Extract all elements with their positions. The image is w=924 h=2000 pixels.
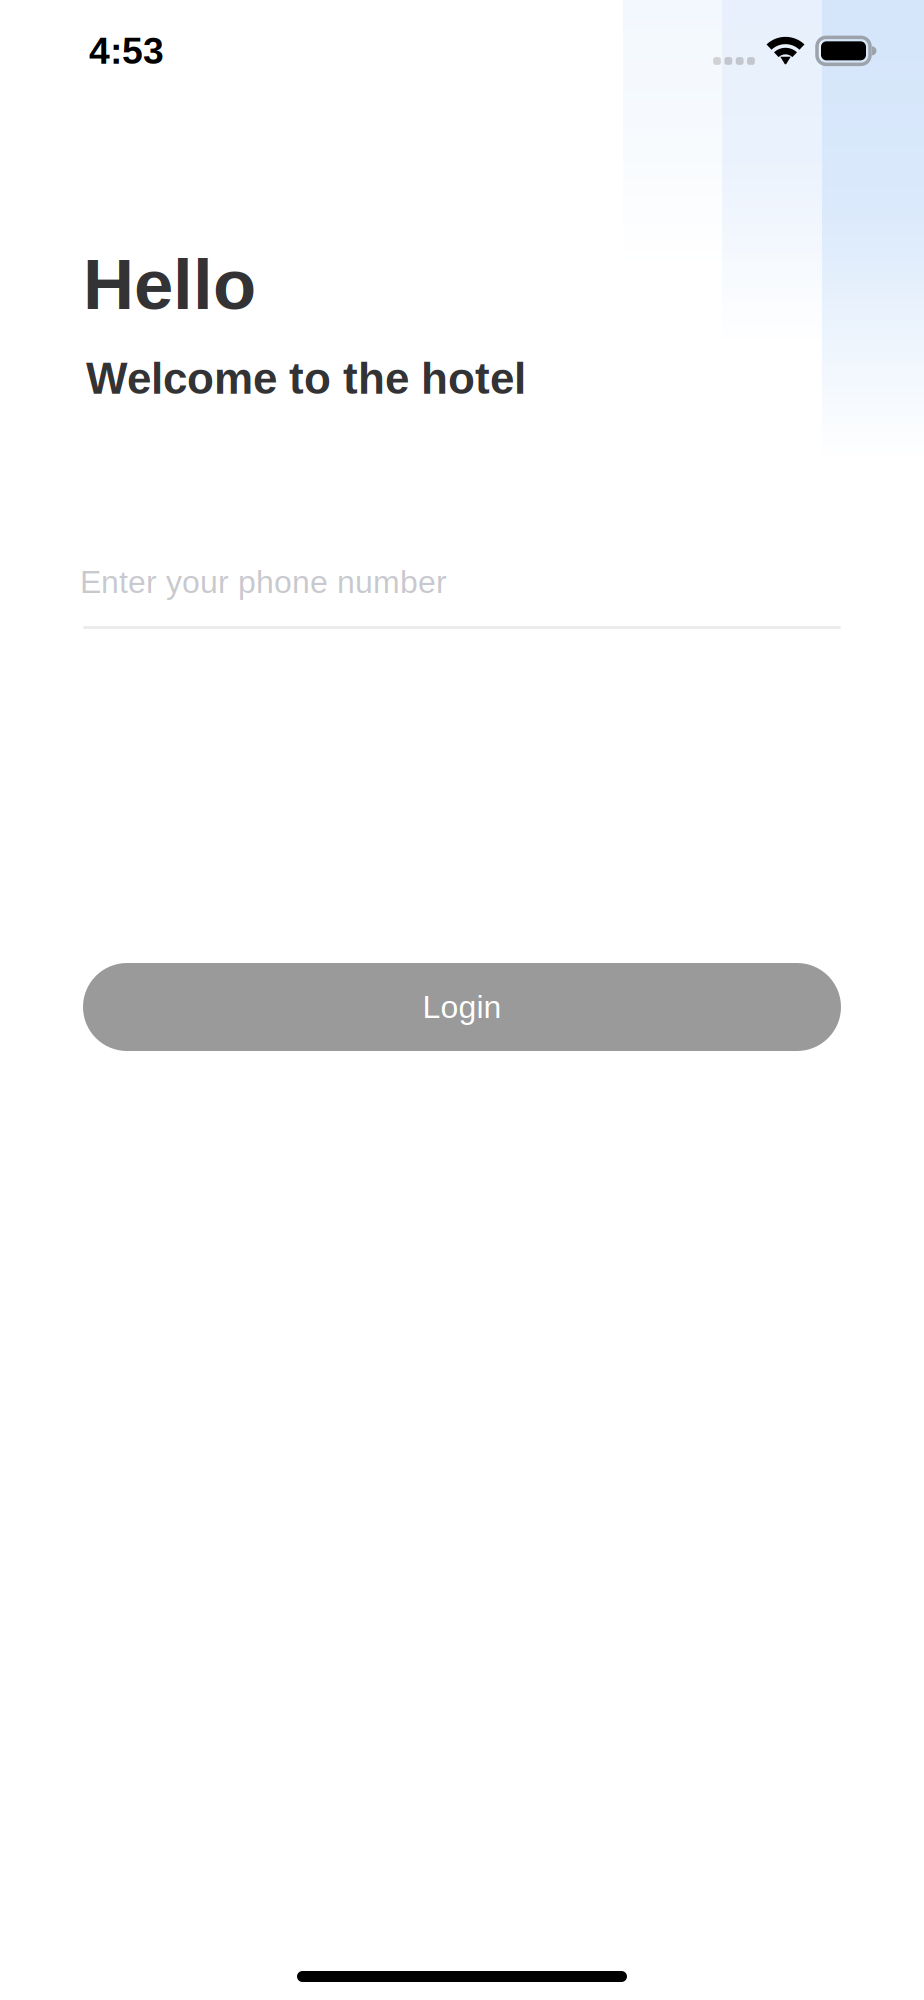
- button[interactable]: Login: [83, 963, 841, 1051]
- staticText: Enter your phone number: [80, 564, 447, 600]
- button[interactable]: Enter your phone number: [83, 540, 841, 630]
- staticText: Welcome to the hotel: [86, 354, 526, 403]
- staticText: 4:53: [89, 30, 164, 72]
- staticText: Login: [422, 989, 501, 1025]
- staticText: Hello: [83, 245, 256, 324]
